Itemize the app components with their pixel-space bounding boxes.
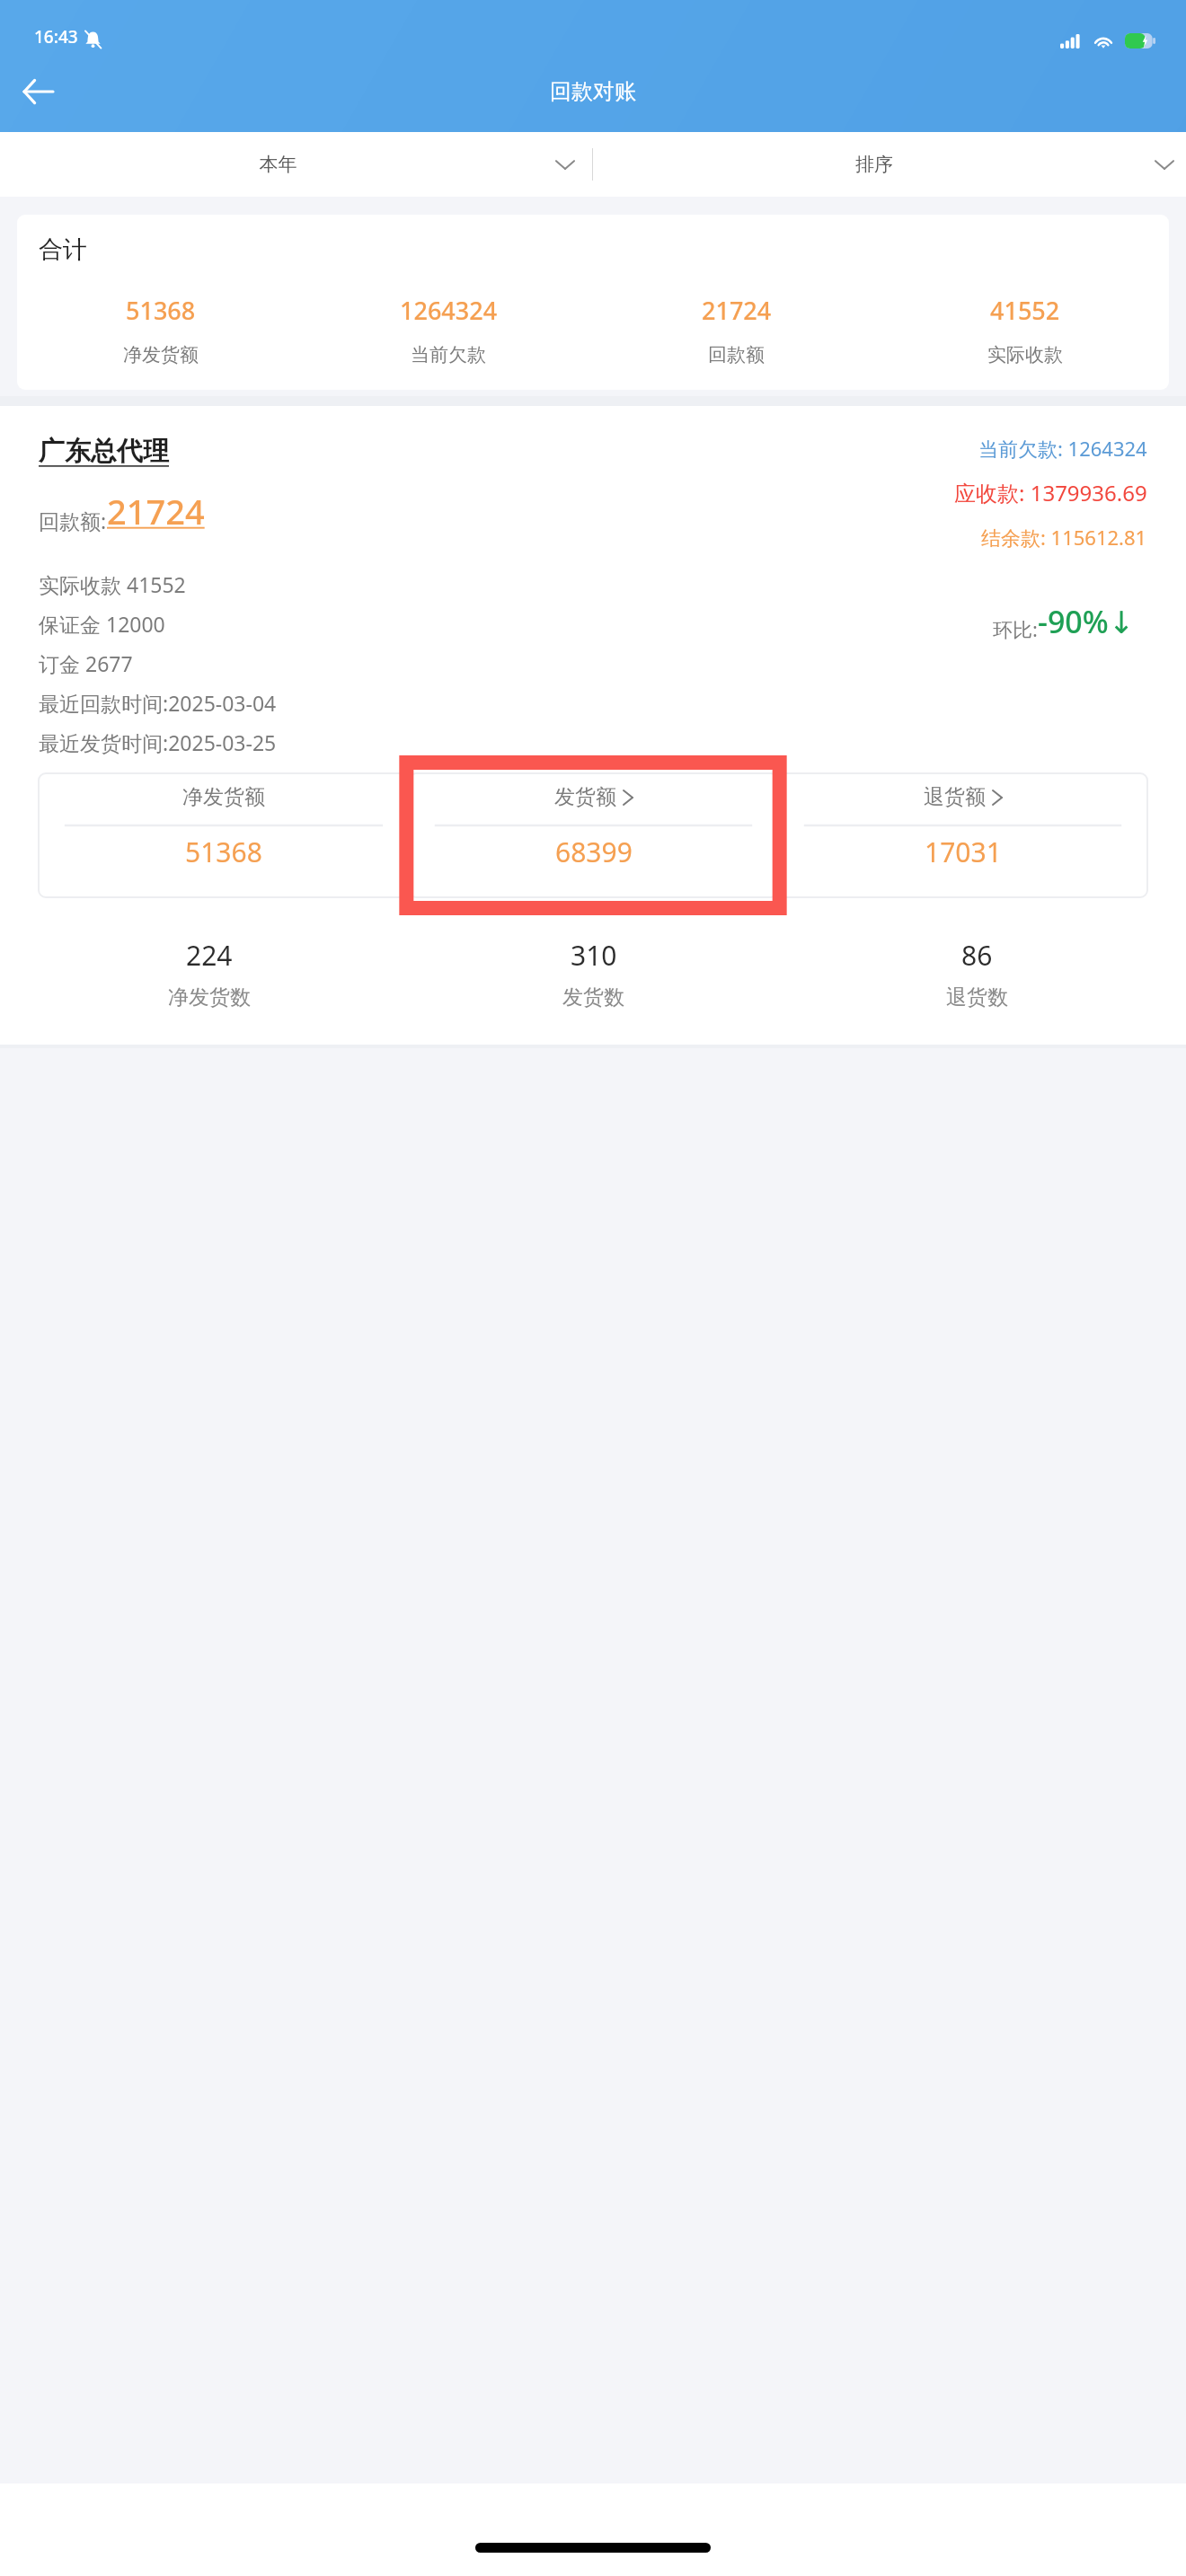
staticText: 结余款: 115612.81 [981,524,1147,551]
staticText: 16:43 [34,25,78,49]
staticText: 保证金 12000 [39,610,165,638]
button[interactable]: 本年 [0,132,592,197]
button[interactable]: 发货额 [409,773,778,897]
staticText: 发货数 [562,984,624,1010]
staticText: -90%↓ [1038,601,1135,642]
staticText: 净发货数 [168,984,251,1010]
staticText: 订金 2677 [39,649,133,677]
button[interactable]: 退货额 [778,773,1147,897]
staticText: 68399 [555,834,633,870]
staticText: 回款额 [708,343,765,366]
staticText: 51368 [126,294,196,327]
button[interactable]: 广东总代理 [17,415,1169,915]
staticText: 1264324 [400,294,498,327]
staticText: 实际收款 41552 [39,570,186,598]
staticText: 应收款: 1379936.69 [954,478,1147,507]
button[interactable]: 合计 [17,215,1169,390]
staticText: 最近回款时间:2025-03-04 [39,689,277,717]
staticText: 回款对账 [550,78,636,105]
staticText: 净发货额 [182,784,265,810]
staticText: 回款额: [39,507,107,534]
staticText: 最近发货时间:2025-03-25 [39,728,277,756]
staticText: 21724 [702,294,772,327]
staticText: 224 [186,937,233,974]
staticText: 实际收款 [987,343,1063,366]
staticText: 41552 [990,294,1060,327]
staticText: 净发货额 [123,343,199,366]
staticText: 当前欠款: 1264324 [978,435,1147,462]
staticText: 本年 [0,153,556,176]
staticText: 51368 [185,834,262,870]
staticText: 当前欠款 [411,343,486,366]
button[interactable]: 排序 [593,132,1186,197]
button[interactable]: 净发货额 [39,773,409,897]
staticText: 排序 [593,153,1155,176]
staticText: 17031 [925,834,1002,870]
staticText: 310 [571,937,617,974]
staticText: 21724 [107,488,205,534]
staticText: 发货额 [554,784,616,810]
staticText: 退货额 [924,784,986,810]
staticText: 合计 [39,234,87,265]
button[interactable]: Back [13,66,63,117]
staticText: 86 [961,937,993,974]
staticText: 环比: [993,615,1038,642]
staticText: 退货数 [946,984,1008,1010]
staticText: 广东总代理 [39,435,169,468]
